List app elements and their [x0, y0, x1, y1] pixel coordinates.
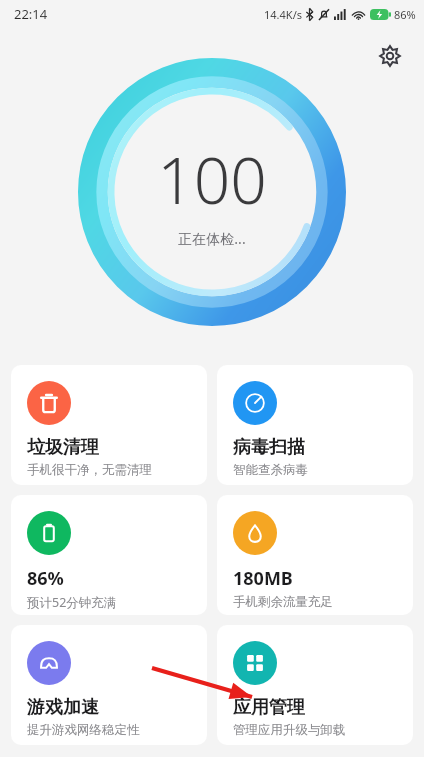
staticText: 游戏加速	[27, 696, 99, 719]
staticText: 管理应用升级与卸载	[233, 722, 346, 738]
button[interactable]: 游戏加速	[11, 625, 207, 745]
button[interactable]: 86%	[11, 495, 207, 615]
staticText: 智能查杀病毒	[233, 462, 308, 478]
staticText: 应用管理	[233, 696, 305, 719]
staticText: 手机剩余流量充足	[233, 594, 333, 610]
staticText: 100	[157, 136, 267, 223]
staticText: 提升游戏网络稳定性	[27, 722, 140, 738]
staticText: 手机很干净，无需清理	[27, 462, 152, 478]
button[interactable]: 应用管理	[217, 625, 413, 745]
staticText: 垃圾清理	[27, 436, 99, 459]
button[interactable]: 180MB	[217, 495, 413, 615]
staticText: 正在体检...	[178, 229, 246, 248]
button[interactable]: 垃圾清理	[11, 365, 207, 485]
staticText: 病毒扫描	[233, 436, 305, 459]
staticText: 86%	[394, 7, 416, 22]
staticText: 180MB	[233, 566, 293, 591]
button[interactable]: Settings	[370, 36, 410, 76]
staticText: 86%	[27, 566, 64, 591]
button[interactable]: 病毒扫描	[217, 365, 413, 485]
staticText: 预计52分钟充满	[27, 594, 117, 611]
staticText: 22:14	[14, 5, 48, 23]
staticText: 14.4K/s	[264, 7, 302, 22]
